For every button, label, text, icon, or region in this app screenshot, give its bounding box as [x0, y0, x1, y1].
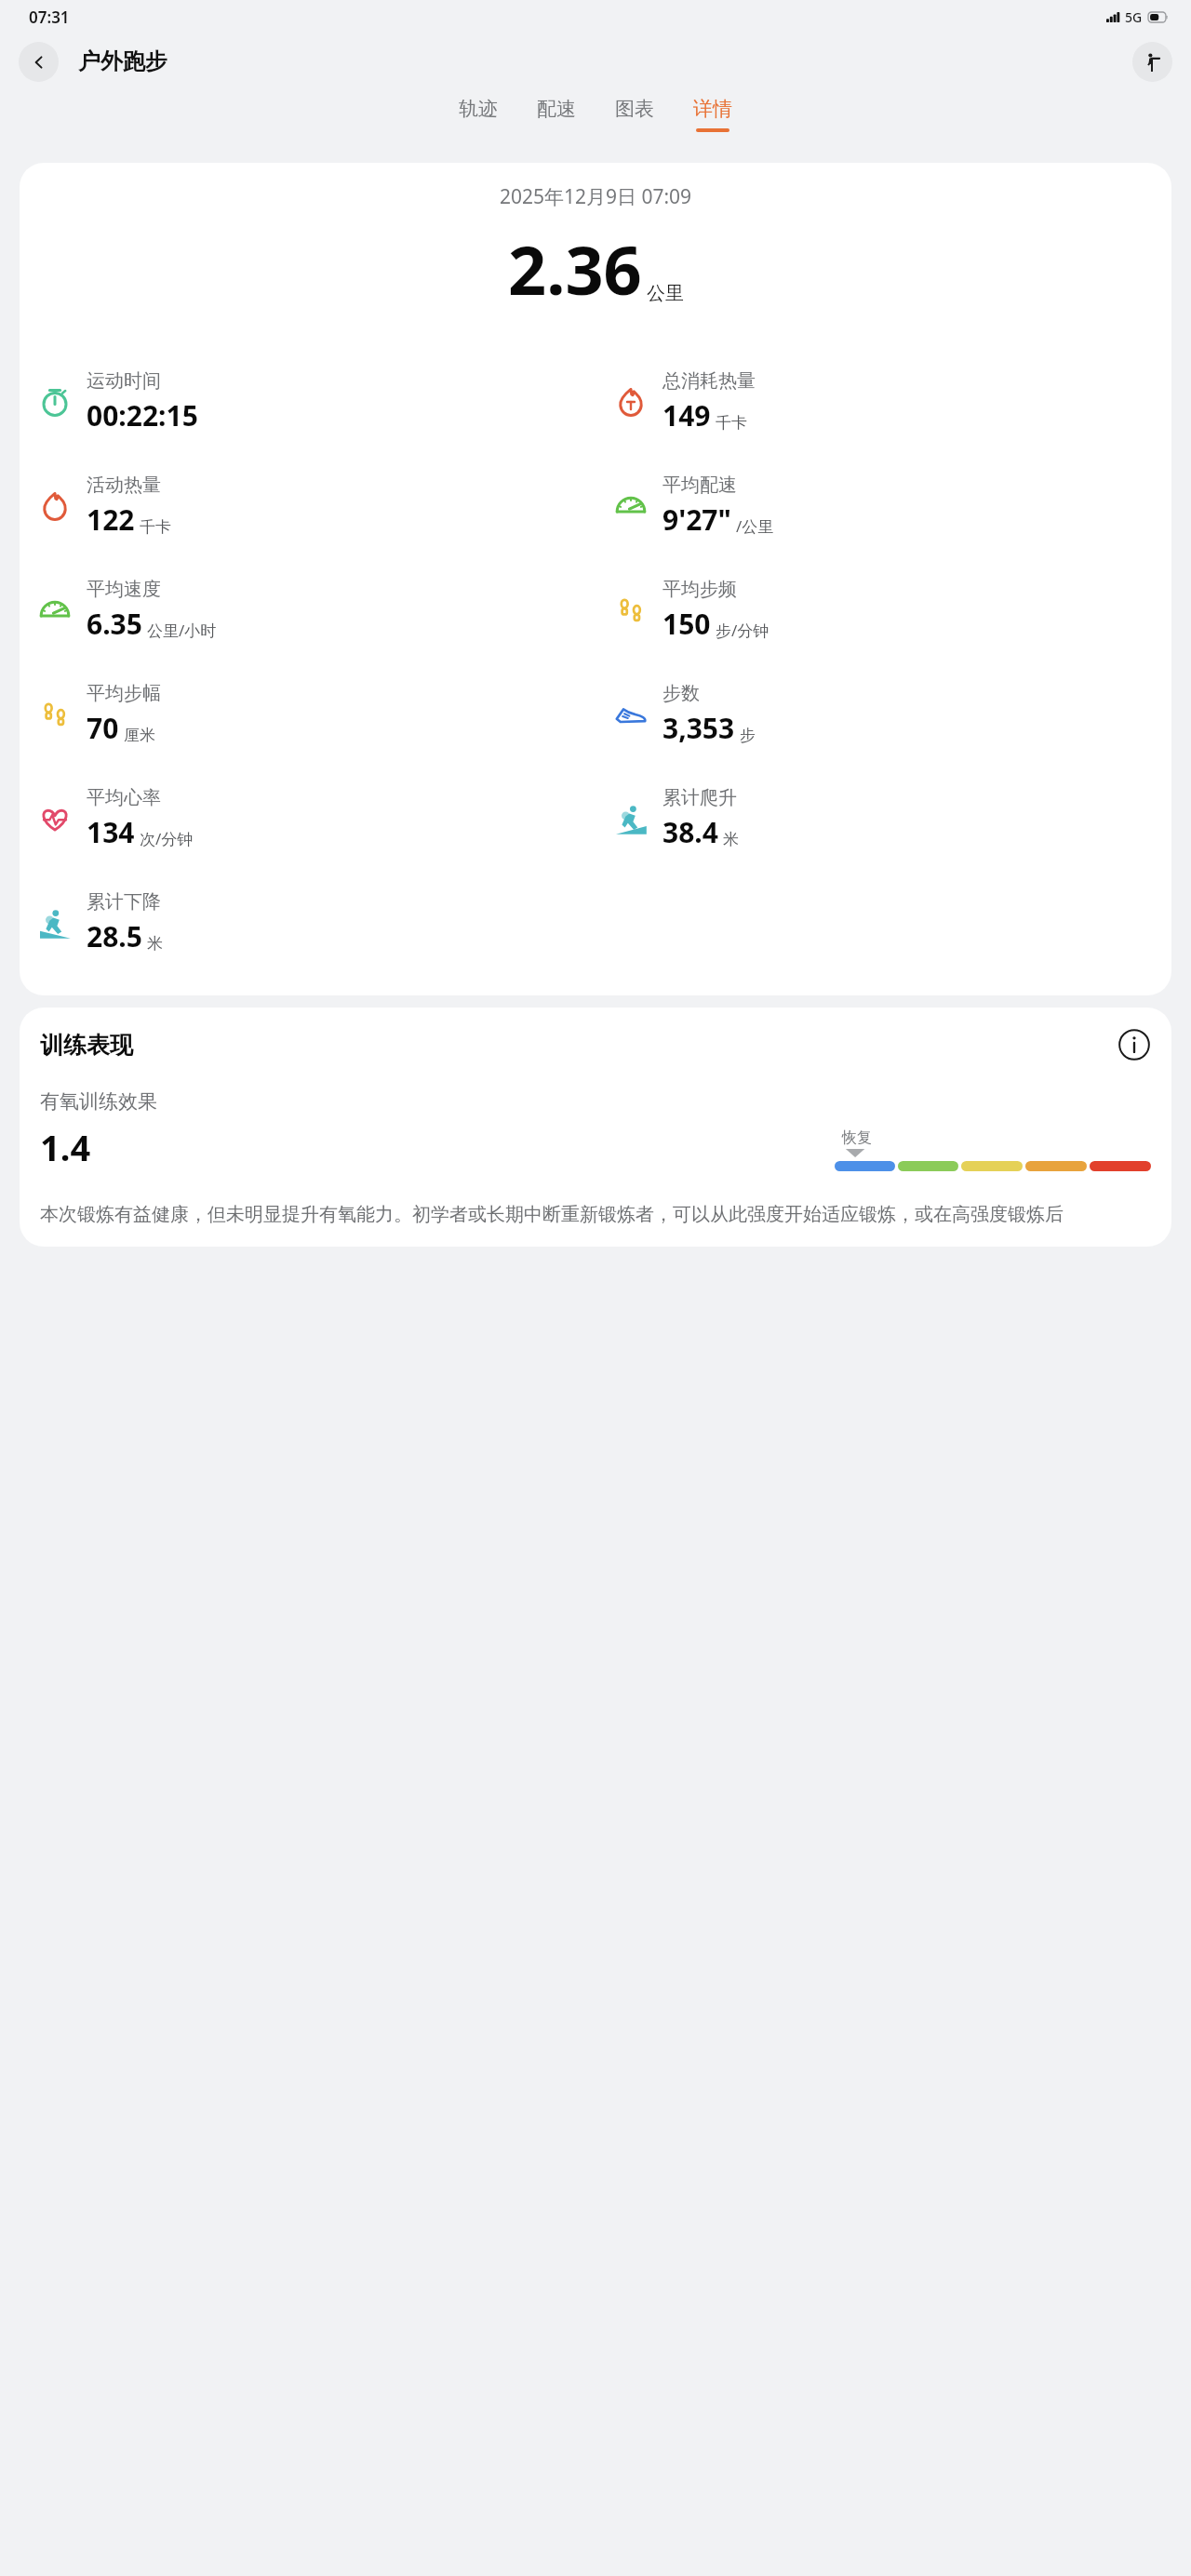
staticText: 恢复 [842, 1128, 872, 1147]
staticText: 122 [87, 501, 135, 539]
button[interactable]: Info [1117, 1028, 1151, 1061]
staticText: 6.35 [87, 605, 142, 643]
staticText: 平均心率 [87, 786, 161, 809]
button[interactable]: Sport type [1132, 42, 1172, 82]
staticText: 步 [740, 726, 756, 745]
button[interactable]: 平均配速 [612, 454, 1171, 558]
staticText: 平均步频 [662, 578, 737, 601]
staticText: /公里 [736, 515, 774, 537]
staticText: 38.4 [662, 813, 718, 851]
staticText: 1.4 [40, 1123, 91, 1171]
staticText: 米 [147, 934, 163, 954]
staticText: 运动时间 [87, 369, 161, 393]
staticText: 累计下降 [87, 890, 161, 914]
staticText: 5G [1125, 8, 1143, 26]
staticText: 图表 [615, 97, 654, 121]
button[interactable]: Back [19, 42, 59, 82]
staticText: 轨迹 [459, 97, 498, 121]
staticText: 9'27" [662, 501, 731, 539]
staticText: 134 [87, 813, 135, 851]
staticText: 70 [87, 709, 119, 747]
button[interactable]: 平均步幅 [36, 662, 595, 767]
button[interactable]: 步数 [612, 662, 1171, 767]
staticText: 2025年12月9日 07:09 [20, 183, 1171, 210]
button[interactable]: 轨迹 [439, 89, 517, 147]
staticText: 平均速度 [87, 578, 161, 601]
button[interactable]: 详情 [674, 89, 752, 147]
button[interactable]: 配速 [517, 89, 595, 147]
staticText: 累计爬升 [662, 786, 737, 809]
staticText: 活动热量 [87, 474, 161, 497]
button[interactable]: 平均心率 [36, 767, 595, 871]
staticText: 千卡 [140, 517, 171, 537]
staticText: 07:31 [29, 7, 70, 28]
staticText: 步/分钟 [716, 620, 769, 641]
staticText: 有氧训练效果 [40, 1089, 157, 1114]
button[interactable]: 平均步频 [612, 558, 1171, 662]
staticText: 3,353 [662, 709, 735, 747]
staticText: 户外跑步 [78, 47, 167, 75]
button[interactable]: 累计下降 [36, 871, 595, 975]
staticText: 训练表现 [40, 1031, 133, 1060]
staticText: 150 [662, 605, 711, 643]
staticText: 千卡 [716, 413, 747, 433]
staticText: 公里/小时 [147, 620, 217, 641]
button[interactable]: 图表 [595, 89, 674, 147]
staticText: 本次锻炼有益健康，但未明显提升有氧能力。初学者或长期中断重新锻炼者，可以从此强度… [40, 1203, 1064, 1226]
button[interactable]: 运动时间 [36, 350, 595, 454]
staticText: 28.5 [87, 917, 142, 955]
staticText: 149 [662, 396, 711, 434]
staticText: 厘米 [124, 726, 155, 745]
button[interactable]: 活动热量 [36, 454, 595, 558]
staticText: 平均步幅 [87, 682, 161, 705]
staticText: 米 [723, 830, 739, 849]
staticText: 步数 [662, 682, 700, 705]
staticText: 次/分钟 [140, 828, 194, 849]
button[interactable]: 平均速度 [36, 558, 595, 662]
button[interactable]: 累计爬升 [612, 767, 1171, 871]
staticText: 配速 [537, 97, 576, 121]
staticText: 2.36 [508, 223, 642, 314]
staticText: 公里 [647, 282, 684, 305]
button[interactable]: 总消耗热量 [612, 350, 1171, 454]
staticText: 00:22:15 [87, 396, 198, 434]
staticText: 总消耗热量 [662, 369, 756, 393]
staticText: 详情 [693, 97, 732, 121]
staticText: 平均配速 [662, 474, 737, 497]
